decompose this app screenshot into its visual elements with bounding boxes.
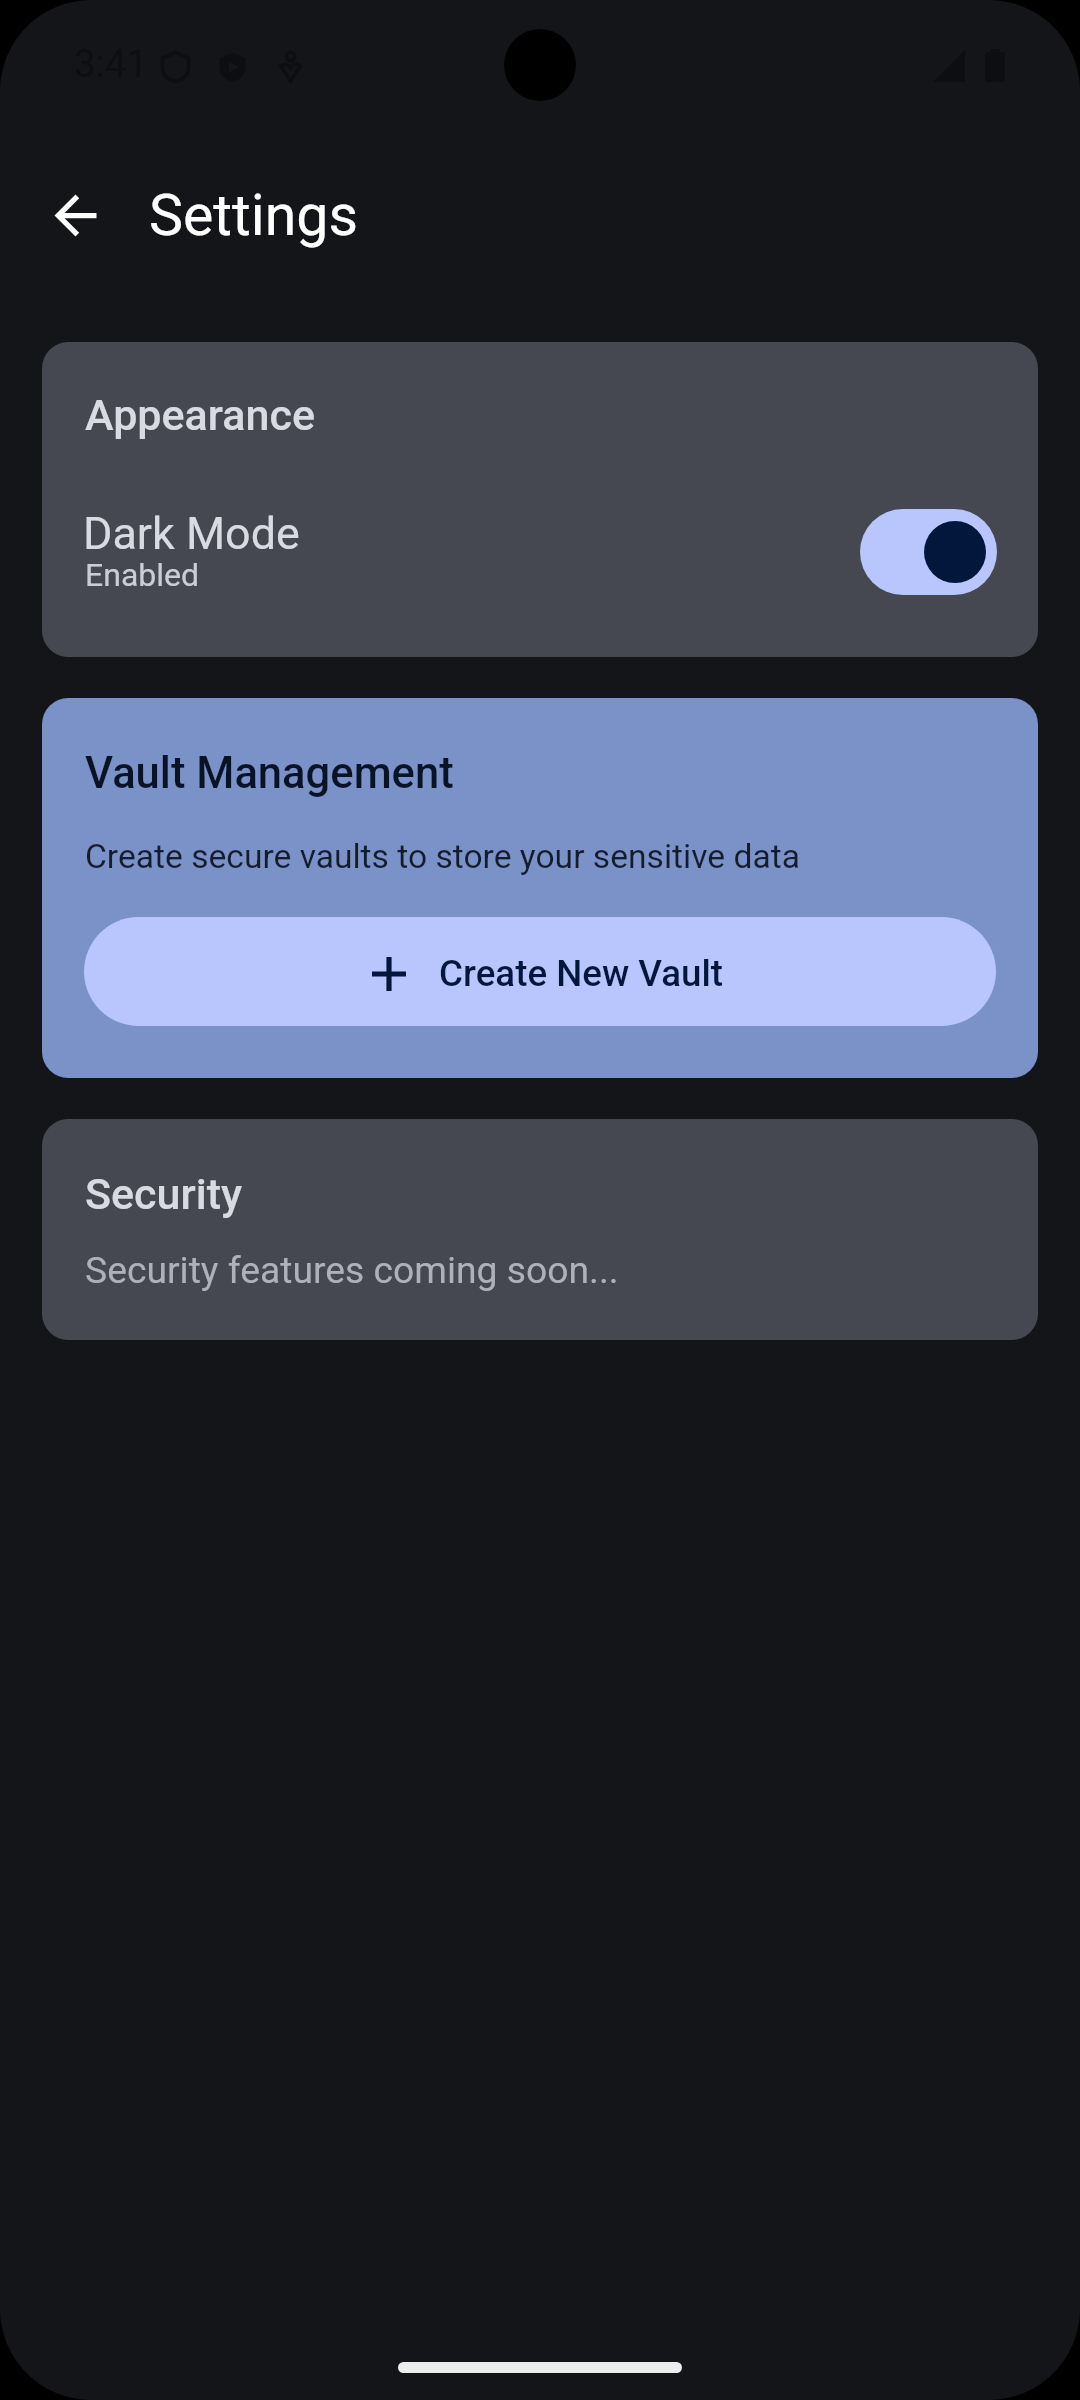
staticText: Create secure vaults to store your sensi… [85,837,800,876]
staticText: Vault Management [85,748,454,799]
staticText: Security [85,1169,243,1219]
button[interactable]: Security [42,1119,1038,1340]
button[interactable]: Create New Vault [84,917,996,1026]
staticText: Create New Vault [439,952,724,995]
button[interactable]: Back [12,152,138,278]
staticText: Security features coming soon... [85,1248,619,1292]
staticText: Enabled [85,556,200,594]
staticText: Settings [149,182,358,249]
staticText: Dark Mode [83,507,300,560]
button[interactable]: Dark Mode toggle [860,509,997,595]
staticText: Appearance [85,390,315,440]
button[interactable]: Appearance [42,342,1038,657]
